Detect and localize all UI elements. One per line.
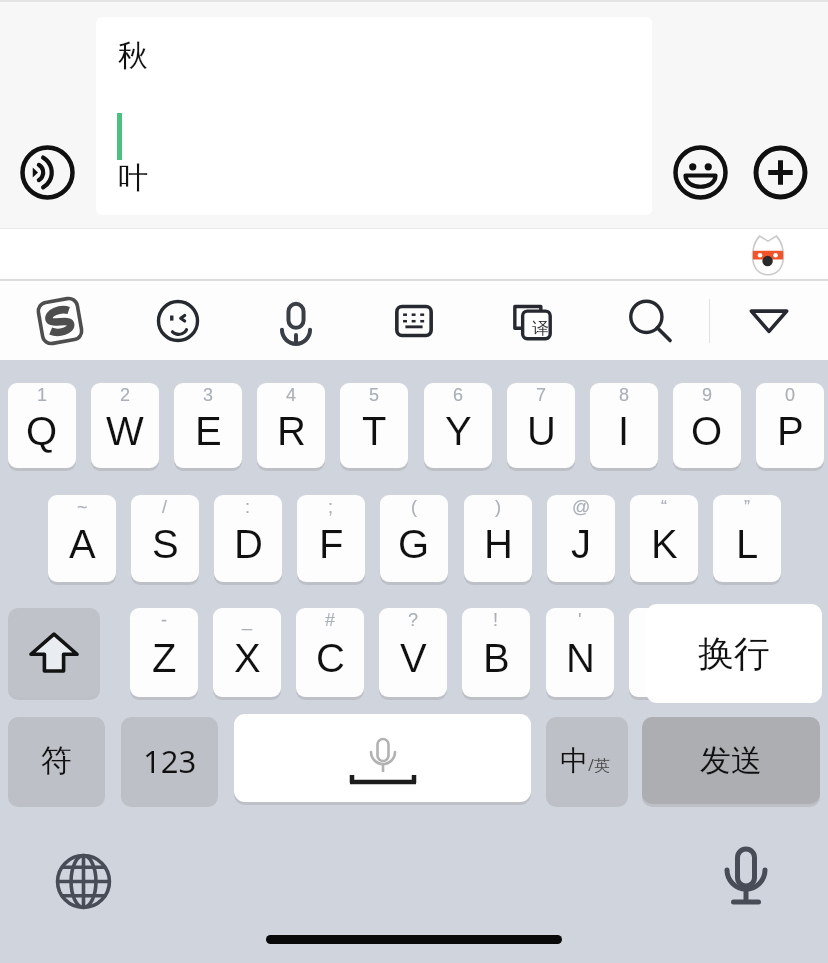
staticText: 0 (785, 385, 796, 405)
button[interactable]: Stickers (119, 281, 237, 360)
staticText: ' (578, 610, 582, 630)
staticText: U (527, 409, 556, 454)
staticText: P (777, 409, 804, 454)
button[interactable]: ( (380, 495, 448, 582)
button[interactable]: 符 (8, 717, 105, 804)
staticText: 2 (120, 385, 131, 405)
staticText: 6 (453, 385, 464, 405)
button[interactable]: " (629, 608, 697, 697)
staticText: 8 (619, 385, 630, 405)
button[interactable]: Space (234, 714, 531, 802)
staticText: E (195, 409, 222, 454)
staticText: 中 (560, 743, 588, 778)
button[interactable]: ; (297, 495, 365, 582)
staticText: ” (744, 497, 750, 517)
button[interactable]: 9 (673, 383, 741, 468)
staticText: - (161, 610, 167, 630)
staticText: A (69, 522, 96, 567)
staticText: 5 (369, 385, 380, 405)
button[interactable]: 0 (756, 383, 824, 468)
button[interactable]: Voice input (713, 841, 779, 913)
staticText: : (245, 497, 251, 517)
staticText: Q (26, 409, 58, 454)
button[interactable]: - (130, 608, 198, 697)
staticText: R (277, 409, 306, 454)
button[interactable]: Keyboard layout (355, 281, 473, 360)
staticText: # (325, 610, 336, 630)
staticText: V (400, 636, 427, 681)
button[interactable]: / (131, 495, 199, 582)
staticText: 秋 (118, 37, 148, 75)
staticText: ! (493, 610, 499, 630)
button[interactable]: Hide keyboard (710, 281, 828, 360)
button[interactable]: 6 (424, 383, 492, 468)
button[interactable]: Emoji (667, 139, 734, 206)
button[interactable]: Sogou input method (0, 281, 119, 360)
button[interactable]: Voice message (14, 139, 81, 206)
button[interactable]: Voice input (237, 281, 355, 360)
button[interactable]: 秋 (96, 17, 652, 215)
button[interactable]: 发送 (642, 717, 820, 804)
staticText: _ (242, 610, 253, 630)
button[interactable]: # (296, 608, 364, 697)
button[interactable]: “ (630, 495, 698, 582)
staticText: G (398, 522, 430, 567)
button[interactable]: 7 (507, 383, 575, 468)
staticText: ) (495, 497, 501, 517)
staticText: D (234, 522, 263, 567)
staticText: 叶 (118, 159, 148, 197)
button[interactable]: 3 (174, 383, 242, 468)
button[interactable]: 4 (257, 383, 325, 468)
staticText: T (362, 409, 387, 454)
button[interactable]: ~ (48, 495, 116, 582)
staticText: Z (152, 636, 177, 681)
button[interactable]: 8 (590, 383, 658, 468)
staticText: C (316, 636, 345, 681)
button[interactable]: ” (713, 495, 781, 582)
staticText: B (483, 636, 510, 681)
staticText: 换行 (698, 631, 770, 676)
staticText: ? (408, 610, 419, 630)
staticText: W (106, 409, 144, 454)
staticText: 1 (37, 385, 48, 405)
staticText: 4 (286, 385, 297, 405)
button[interactable]: More options (747, 139, 814, 206)
button[interactable]: : (214, 495, 282, 582)
button[interactable]: Translate (473, 281, 591, 360)
staticText: / (162, 497, 168, 517)
staticText: 123 (143, 740, 197, 782)
staticText: 3 (203, 385, 214, 405)
staticText: I (618, 409, 630, 454)
staticText: H (484, 522, 513, 567)
staticText: 发送 (700, 741, 762, 780)
button[interactable]: Shift (8, 608, 100, 697)
button[interactable]: @ (547, 495, 615, 582)
staticText: O (691, 409, 723, 454)
button[interactable]: Search (591, 281, 709, 360)
staticText: ; (328, 497, 334, 517)
staticText: S (152, 522, 179, 567)
staticText: F (319, 522, 344, 567)
button[interactable]: ! (462, 608, 530, 697)
button[interactable]: 123 (121, 717, 218, 804)
button[interactable]: 中 (546, 717, 628, 804)
staticText: “ (661, 497, 667, 517)
button[interactable]: 2 (91, 383, 159, 468)
staticText: 7 (536, 385, 547, 405)
button[interactable]: 5 (340, 383, 408, 468)
button[interactable]: Assistant (745, 232, 791, 278)
button[interactable]: ' (546, 608, 614, 697)
button[interactable]: Switch language (51, 849, 115, 913)
button[interactable]: 换行 (646, 604, 822, 703)
button[interactable]: ) (464, 495, 532, 582)
staticText: 符 (41, 741, 72, 780)
button[interactable]: ? (379, 608, 447, 697)
staticText: X (234, 636, 261, 681)
button[interactable]: 1 (8, 383, 76, 468)
button[interactable]: _ (213, 608, 281, 697)
staticText: ( (411, 497, 417, 517)
staticText: 译 (532, 318, 549, 339)
staticText: N (566, 636, 595, 681)
